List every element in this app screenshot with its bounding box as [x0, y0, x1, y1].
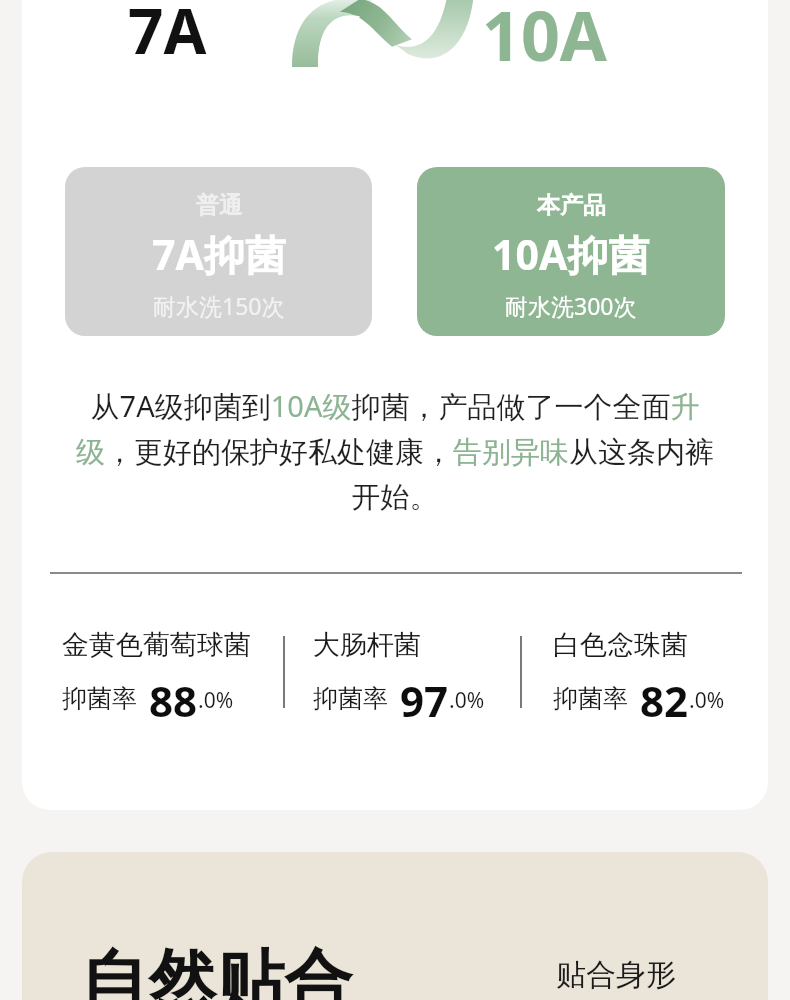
staticText: 7A抑菌 [152, 226, 286, 282]
staticText: .0% [689, 686, 725, 715]
staticText: 从7A级抑菌到10A级抑菌，产品做了一个全面升级，更好的保护好私处健康，告别异味… [62, 386, 728, 515]
staticText: 7A [128, 0, 207, 72]
staticText: 抑菌率 [553, 683, 628, 714]
staticText: 普通 [196, 191, 242, 220]
staticText: 金黄色葡萄球菌 [62, 628, 251, 662]
staticText: 本产品 [537, 191, 606, 220]
staticText: 10A抑菌 [492, 226, 650, 282]
staticText: .0% [449, 686, 485, 715]
staticText: 10A [482, 0, 607, 81]
button[interactable]: 本产品 [417, 167, 725, 336]
staticText: 82 [640, 672, 689, 718]
button[interactable]: 普通 [65, 167, 372, 336]
staticText: .0% [198, 686, 234, 715]
staticText: 自然贴合 [80, 940, 352, 1000]
staticText: 耐水洗300次 [505, 290, 637, 321]
staticText: 耐水洗150次 [153, 290, 285, 321]
staticText: 97 [400, 672, 449, 718]
staticText: 抑菌率 [62, 683, 137, 714]
staticText: 抑菌率 [313, 683, 388, 714]
staticText: 白色念珠菌 [553, 628, 688, 662]
staticText: 88 [149, 672, 198, 718]
other: Brand ribbon logo [280, 0, 480, 78]
staticText: 大肠杆菌 [313, 628, 421, 662]
staticText: 贴合身形 [556, 956, 676, 994]
